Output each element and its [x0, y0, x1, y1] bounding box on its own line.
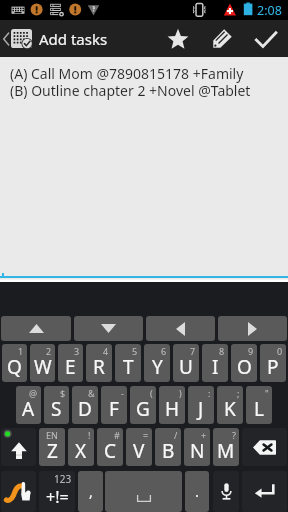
staticText: S [51, 396, 62, 422]
button[interactable]: @ [16, 386, 41, 424]
staticText: N [190, 438, 205, 464]
button[interactable]: 2 [30, 344, 55, 382]
staticText: D [78, 396, 92, 422]
button[interactable]: 1 [2, 344, 27, 382]
staticText: 4 [103, 345, 109, 357]
staticText: R [93, 354, 105, 380]
staticText: + [201, 429, 207, 441]
staticText: ) [179, 387, 182, 399]
button[interactable]: ? [213, 428, 239, 466]
staticText: 5 [132, 345, 138, 357]
staticText: 9 [248, 345, 254, 357]
staticText: 123 [54, 472, 72, 486]
staticText: ? [232, 429, 236, 441]
staticText: H [165, 396, 180, 422]
staticText: +!= [46, 486, 69, 508]
staticText: ! [88, 429, 91, 441]
button[interactable]: 3 [58, 344, 83, 382]
staticText: = [143, 429, 149, 441]
staticText: G [136, 396, 150, 422]
staticText: K [224, 396, 236, 422]
staticText: Q [7, 354, 22, 380]
staticText: T [123, 354, 134, 380]
button[interactable]: EN [39, 428, 65, 466]
staticText: 6 [161, 345, 167, 357]
staticText: F [109, 396, 119, 422]
staticText: EN [46, 429, 58, 441]
staticText: X [75, 438, 87, 464]
button[interactable]: Move down [74, 316, 143, 341]
button[interactable]: Edit [200, 20, 244, 57]
staticText: 2 [46, 345, 52, 357]
button[interactable]: Move left [146, 316, 215, 341]
button[interactable]: Move right [218, 316, 287, 341]
button[interactable]: , [78, 471, 103, 512]
button[interactable]: ; [217, 386, 243, 424]
button[interactable]: 8 [202, 344, 228, 382]
staticText: $ [60, 387, 66, 399]
button[interactable]: Gesture input [1, 471, 36, 512]
button[interactable]: $ [44, 386, 69, 424]
staticText: 7 [190, 345, 196, 357]
staticText: " [265, 387, 269, 399]
staticText: ( [150, 387, 153, 399]
button[interactable]: ( [130, 386, 156, 424]
staticText: V [133, 438, 145, 464]
button[interactable]: ) [159, 386, 185, 424]
button[interactable]: Star [156, 20, 200, 57]
staticText: Y [152, 354, 163, 380]
button[interactable]: Symbols [39, 471, 75, 512]
button[interactable]: Done [244, 20, 288, 57]
staticText: Add tasks [39, 29, 108, 49]
button[interactable]: / [155, 428, 181, 466]
button[interactable]: 4 [86, 344, 112, 382]
staticText: (A) Call Mom @7890815178 +Family (B) Out… [10, 64, 251, 100]
button[interactable]: Enter [242, 471, 287, 512]
button[interactable]: = [126, 428, 152, 466]
staticText: 3 [74, 345, 80, 357]
staticText: @ [29, 387, 38, 399]
staticText: 8 [219, 345, 225, 357]
button[interactable]: ! [68, 428, 94, 466]
staticText: B [162, 438, 175, 464]
button[interactable]: 0 [260, 344, 286, 382]
button[interactable]: + [184, 428, 210, 466]
button[interactable]: Move up [1, 316, 71, 341]
staticText: P [267, 354, 279, 380]
staticText: , [89, 482, 93, 501]
staticText: ; [237, 387, 240, 399]
staticText: # [114, 429, 120, 441]
staticText: 0 [277, 345, 283, 357]
button[interactable]: - [101, 386, 127, 424]
staticText: O [237, 354, 252, 380]
staticText: & [88, 387, 95, 399]
button[interactable]: 5 [115, 344, 141, 382]
button[interactable]: Navigate up [0, 20, 35, 57]
staticText: W [34, 354, 52, 380]
button[interactable]: 6 [144, 344, 170, 382]
staticText: / [174, 429, 178, 441]
staticText: M [217, 438, 235, 464]
staticText: : [208, 387, 211, 399]
staticText: 2:08 [257, 2, 282, 19]
staticText: L [254, 396, 264, 422]
staticText: U [179, 354, 193, 380]
button[interactable]: Backspace [242, 428, 287, 466]
button[interactable]: 7 [173, 344, 199, 382]
button[interactable]: Shift [1, 428, 36, 466]
staticText: A [22, 396, 35, 422]
staticText: E [65, 354, 76, 380]
button[interactable]: # [97, 428, 123, 466]
button[interactable]: : [188, 386, 214, 424]
staticText: I [212, 354, 219, 380]
button[interactable]: 9 [231, 344, 257, 382]
button[interactable]: (A) Call Mom @7890815178 +Family (B) Out… [0, 57, 288, 282]
button[interactable]: Voice input [213, 471, 239, 512]
staticText: - [121, 387, 124, 399]
button[interactable]: Space [105, 471, 182, 512]
button[interactable]: . [185, 471, 209, 512]
button[interactable]: & [72, 386, 98, 424]
button[interactable]: " [246, 386, 272, 424]
staticText: C [104, 438, 117, 464]
staticText: 1 [18, 345, 24, 357]
